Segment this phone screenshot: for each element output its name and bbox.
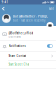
- staticText: Share Contact: [8, 54, 26, 58]
- staticText: Notifications: [8, 44, 25, 48]
- button[interactable]: Edit: [49, 4, 56, 13]
- button[interactable]: @BotFather_official: [0, 28, 56, 40]
- staticText: Edit: [49, 7, 54, 10]
- staticText: username: [8, 35, 21, 38]
- button[interactable]: Start Secret Chat: [0, 60, 56, 68]
- button[interactable]: Send message: [46, 22, 53, 29]
- staticText: bot · last seen recently: [13, 19, 45, 22]
- staticText: 9:41: [2, 0, 9, 4]
- button[interactable]: Share Contact: [0, 52, 56, 60]
- staticText: Bot @BotFather - PUBLIC: [13, 15, 48, 18]
- button[interactable]: Back: [0, 4, 7, 13]
- button[interactable]: Notifications: [0, 40, 56, 52]
- staticText: @BotFather_official: [8, 31, 33, 35]
- staticText: Start Secret Chat: [8, 63, 29, 66]
